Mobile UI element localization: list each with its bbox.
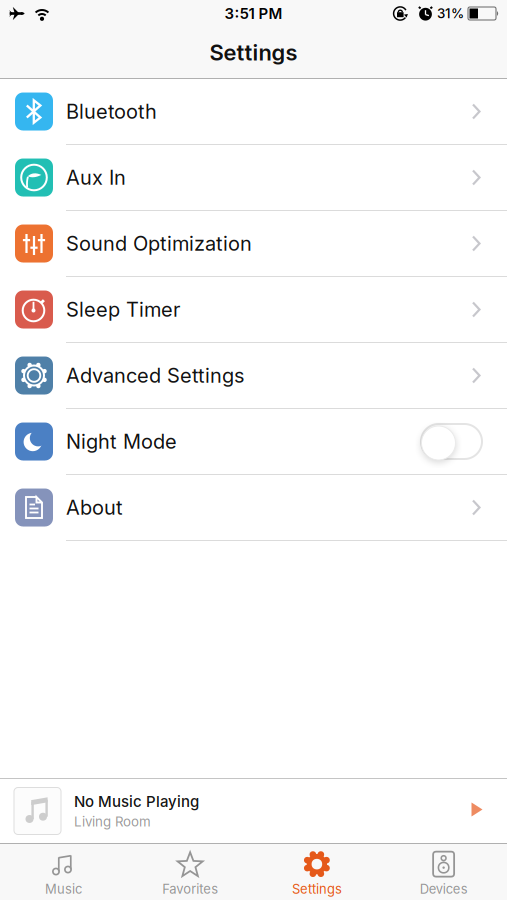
staticText: Settings xyxy=(209,39,297,66)
staticText: Settings xyxy=(292,881,342,897)
staticText: About xyxy=(66,495,123,520)
button[interactable]: Music xyxy=(0,847,127,897)
button[interactable]: Aux In xyxy=(0,145,507,211)
staticText: Bluetooth xyxy=(66,99,157,124)
button[interactable]: Favorites xyxy=(127,847,254,897)
staticText: Favorites xyxy=(162,881,218,897)
staticText: Devices xyxy=(420,881,468,897)
button[interactable]: Night Mode xyxy=(421,424,482,459)
staticText: Sleep Timer xyxy=(66,297,180,322)
button[interactable]: Play xyxy=(471,803,507,818)
button[interactable]: No Music Playing xyxy=(0,787,471,834)
staticText: 3:51 PM xyxy=(224,4,282,22)
button[interactable]: Sound Optimization xyxy=(0,211,507,277)
staticText: Night Mode xyxy=(66,429,177,454)
button[interactable]: Night Mode xyxy=(0,409,507,475)
staticText: Music xyxy=(45,881,82,897)
staticText: 31% xyxy=(437,5,464,21)
button[interactable]: Bluetooth xyxy=(0,79,507,145)
staticText: Living Room xyxy=(74,813,151,830)
staticText: Advanced Settings xyxy=(66,363,244,388)
staticText: Aux In xyxy=(66,165,126,190)
staticText: Sound Optimization xyxy=(66,231,252,256)
button[interactable]: Sleep Timer xyxy=(0,277,507,343)
button[interactable]: Advanced Settings xyxy=(0,343,507,409)
button[interactable]: About xyxy=(0,475,507,541)
button[interactable]: Settings xyxy=(253,847,380,897)
staticText: No Music Playing xyxy=(74,792,199,810)
button[interactable]: Devices xyxy=(380,847,507,897)
